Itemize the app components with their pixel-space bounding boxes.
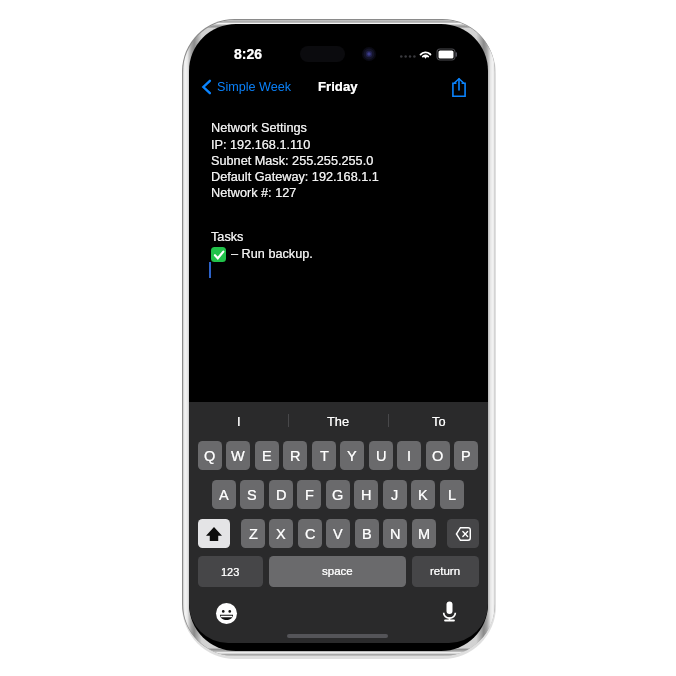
staticText: K	[418, 487, 428, 503]
button[interactable]: Simple Week	[200, 73, 291, 101]
staticText: To	[432, 414, 446, 428]
button[interactable]: Q	[198, 441, 222, 470]
button[interactable]: X	[269, 519, 293, 548]
button[interactable]: return	[412, 556, 479, 587]
button[interactable]: Backspace	[447, 519, 479, 548]
button[interactable]: Y	[340, 441, 364, 470]
button[interactable]: J	[383, 480, 407, 509]
button[interactable]: R	[283, 441, 307, 470]
button[interactable]: Shift	[198, 519, 230, 548]
button[interactable]: Emoji keyboard	[214, 601, 239, 626]
staticText: R	[290, 448, 301, 464]
button[interactable]: M	[412, 519, 436, 548]
staticText: X	[276, 526, 286, 542]
staticText: T	[320, 448, 329, 464]
button[interactable]: I	[189, 402, 288, 439]
button[interactable]: C	[298, 519, 322, 548]
button[interactable]: U	[369, 441, 393, 470]
staticText: H	[361, 487, 372, 503]
staticText: W	[231, 448, 245, 464]
staticText: 123	[221, 566, 240, 578]
staticText: – Run backup.	[231, 247, 313, 261]
button[interactable]: F	[297, 480, 321, 509]
staticText: space	[322, 565, 353, 578]
staticText: C	[305, 526, 316, 542]
staticText: V	[333, 526, 343, 542]
staticText: A	[219, 487, 229, 503]
button[interactable]: A	[212, 480, 236, 509]
button[interactable]: B	[355, 519, 379, 548]
button[interactable]: E	[255, 441, 279, 470]
staticText: I	[237, 414, 241, 428]
staticText: G	[332, 487, 344, 503]
button[interactable]: T	[312, 441, 336, 470]
staticText: J	[391, 487, 399, 503]
button[interactable]: 123	[198, 556, 263, 587]
button[interactable]: space	[269, 556, 406, 587]
button[interactable]: P	[454, 441, 478, 470]
button[interactable]: Z	[241, 519, 265, 548]
staticText: I	[407, 448, 412, 464]
button[interactable]: H	[354, 480, 378, 509]
staticText: Z	[249, 526, 258, 542]
staticText: O	[432, 448, 444, 464]
button[interactable]: Dictation	[438, 600, 460, 622]
staticText: Tasks	[211, 230, 244, 244]
button[interactable]: S	[240, 480, 264, 509]
staticText: B	[362, 526, 372, 542]
staticText: S	[247, 487, 257, 503]
button[interactable]: W	[226, 441, 250, 470]
staticText: P	[461, 448, 471, 464]
staticText: Simple Week	[217, 80, 291, 94]
staticText: The	[327, 414, 350, 428]
staticText: Network Settings IP: 192.168.1.110 Subne…	[211, 121, 379, 199]
staticText: Q	[204, 448, 216, 464]
staticText: 8:26	[234, 46, 263, 62]
button[interactable]: V	[326, 519, 350, 548]
staticText: L	[448, 487, 457, 503]
button[interactable]: O	[426, 441, 450, 470]
staticText: D	[276, 487, 287, 503]
button[interactable]: Share	[446, 74, 472, 100]
button[interactable]: N	[383, 519, 407, 548]
staticText: N	[390, 526, 401, 542]
button[interactable]: D	[269, 480, 293, 509]
staticText: return	[430, 565, 461, 578]
button[interactable]: K	[411, 480, 435, 509]
button[interactable]: G	[326, 480, 350, 509]
button[interactable]: I	[397, 441, 421, 470]
staticText: F	[305, 487, 314, 503]
button[interactable]: L	[440, 480, 464, 509]
staticText: E	[262, 448, 272, 464]
staticText: Friday	[318, 79, 358, 94]
staticText: M	[418, 526, 431, 542]
staticText: U	[376, 448, 387, 464]
button[interactable]: To	[389, 402, 488, 439]
button[interactable]: The	[289, 402, 388, 439]
staticText: Y	[347, 448, 357, 464]
